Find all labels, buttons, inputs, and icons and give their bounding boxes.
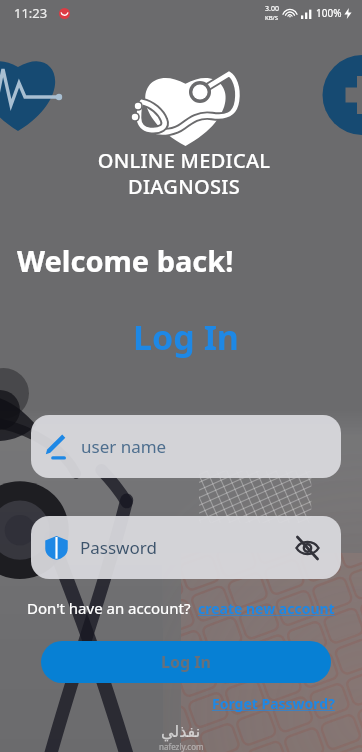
staticText: 11:23 xyxy=(14,4,48,22)
staticText: 3.00 xyxy=(265,4,279,14)
button[interactable]: Log In xyxy=(41,641,331,683)
staticText: Don't have an account? xyxy=(27,598,191,618)
staticText: Welcome back! xyxy=(17,241,234,280)
staticText: نفذلي xyxy=(161,722,201,741)
button[interactable]: Password xyxy=(31,516,341,579)
staticText: ONLINE MEDICAL xyxy=(3,147,362,174)
staticText: Log In xyxy=(5,314,362,360)
staticText: KB/S xyxy=(265,14,279,22)
button[interactable]: create new account xyxy=(198,599,335,618)
button[interactable]: user name xyxy=(31,415,341,478)
staticText: Log In xyxy=(161,651,211,673)
staticText: Forget Password? xyxy=(212,694,335,713)
staticText: create new account xyxy=(198,599,335,618)
button[interactable]: Forget Password? xyxy=(212,694,335,713)
staticText: DIAGNOSIS xyxy=(3,173,362,200)
staticText: nafezly.com xyxy=(159,741,204,752)
staticText: 100% xyxy=(316,6,342,20)
button[interactable]: Show password xyxy=(292,533,322,563)
staticText: user name xyxy=(81,435,167,458)
staticText: Password xyxy=(80,536,157,559)
